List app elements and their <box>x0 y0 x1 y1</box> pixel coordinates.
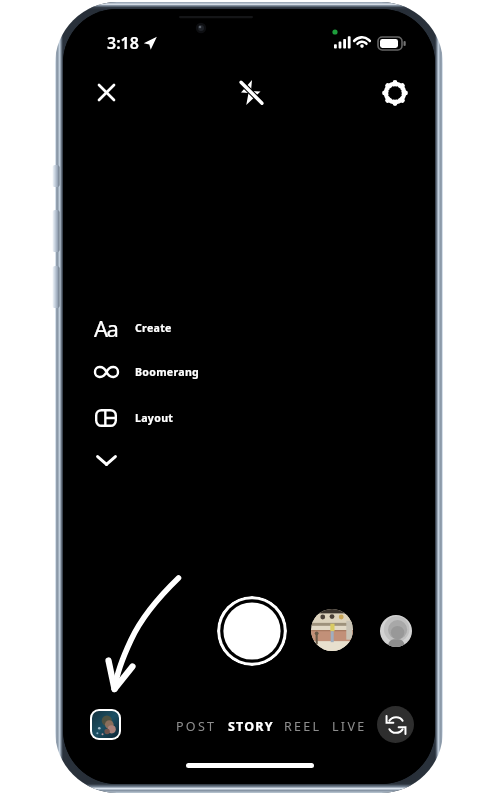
staticText: STORY <box>228 718 274 735</box>
button[interactable]: Profile thumbnail <box>380 615 412 647</box>
button[interactable]: Show fewer options <box>86 443 126 477</box>
staticText: Create <box>135 321 172 335</box>
staticText: 3:18 <box>107 32 139 54</box>
staticText: Boomerang <box>135 365 200 379</box>
button[interactable]: Flash off <box>228 70 272 114</box>
button[interactable]: Capture photo <box>217 596 287 666</box>
button[interactable]: Aa <box>88 307 238 349</box>
button[interactable]: Layout <box>88 397 238 439</box>
button[interactable]: Open gallery <box>92 711 119 738</box>
button[interactable]: Story thumbnail <box>311 609 353 651</box>
button[interactable]: Boomerang <box>88 351 238 393</box>
staticText: Layout <box>135 411 174 425</box>
button[interactable]: REEL <box>281 713 325 740</box>
staticText: REEL <box>284 718 322 735</box>
button[interactable]: Camera settings <box>373 71 417 115</box>
button[interactable]: LIVE <box>329 713 370 740</box>
button[interactable]: STORY <box>225 713 277 740</box>
staticText: POST <box>176 718 217 735</box>
button[interactable]: Switch camera <box>377 706 414 743</box>
button[interactable]: POST <box>173 713 220 740</box>
staticText: LIVE <box>332 718 367 735</box>
button[interactable]: Close camera <box>86 72 126 112</box>
staticText: Aa <box>94 313 118 343</box>
